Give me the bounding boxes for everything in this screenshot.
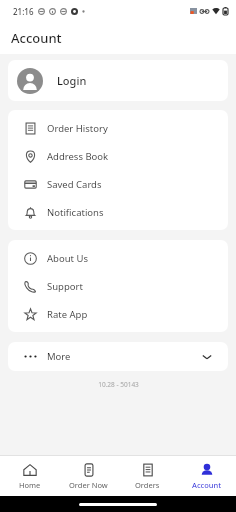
staticText: Orders <box>135 480 160 490</box>
button[interactable]: Notifications <box>8 198 228 226</box>
staticText: More <box>47 350 71 363</box>
button[interactable]: Address Book <box>8 142 228 170</box>
button[interactable]: Account <box>177 456 236 496</box>
staticText: Notifications <box>47 206 104 219</box>
button[interactable]: Order Now <box>59 456 118 496</box>
staticText: About Us <box>47 252 88 265</box>
button[interactable]: Login <box>8 60 228 101</box>
button[interactable]: Order History <box>8 114 228 142</box>
staticText: Home <box>19 480 41 490</box>
button[interactable]: More <box>8 342 228 371</box>
button[interactable]: Saved Cards <box>8 170 228 198</box>
staticText: Order Now <box>69 480 108 490</box>
button[interactable]: Support <box>8 272 228 300</box>
staticText: Rate App <box>47 308 88 321</box>
button[interactable]: About Us <box>8 244 228 272</box>
button[interactable]: Home <box>0 456 59 496</box>
staticText: Account <box>192 480 222 490</box>
staticText: 10.28 - 50143 <box>98 380 139 389</box>
staticText: Account <box>11 29 62 47</box>
staticText: 21:16 <box>13 6 34 17</box>
staticText: Saved Cards <box>47 178 102 191</box>
staticText: Order History <box>47 122 108 135</box>
button[interactable]: Orders <box>118 456 177 496</box>
staticText: Login <box>57 73 87 88</box>
button[interactable]: Rate App <box>8 300 228 328</box>
staticText: Address Book <box>47 150 109 163</box>
staticText: Support <box>47 280 83 293</box>
